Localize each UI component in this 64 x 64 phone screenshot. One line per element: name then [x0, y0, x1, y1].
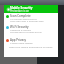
staticText: Wi-Fi Security: [10, 25, 29, 29]
staticText: No threats were found: [10, 17, 37, 20]
button[interactable]: Wi-Fi Security: [4, 25, 58, 36]
button[interactable]: App Privacy: [4, 38, 58, 49]
staticText: Last scan was 2 minutes ago: [10, 19, 44, 22]
staticText: 3 apps need review: [10, 41, 33, 44]
button[interactable]: Scan Complete: [4, 14, 58, 25]
staticText: Scan Complete: [10, 14, 31, 18]
staticText: Mobile Security: [10, 6, 33, 10]
staticText: Network is secure: [10, 28, 31, 31]
staticText: Keep your device protected at all times: [9, 45, 53, 48]
staticText: App Privacy: [10, 38, 27, 42]
other: Shield icon: [6, 7, 11, 12]
staticText: Connected to HomeNet 5G: [10, 30, 42, 33]
button[interactable]: Shield icon: [4, 5, 58, 13]
staticText: Protection is on: [10, 9, 30, 13]
